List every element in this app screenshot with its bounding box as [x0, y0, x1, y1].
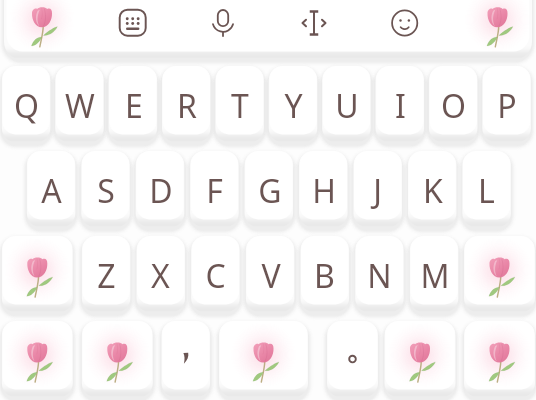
staticText: W — [65, 84, 95, 128]
button[interactable]: Emoji — [464, 321, 535, 397]
button[interactable]: Emoji — [219, 321, 308, 397]
button[interactable]: S — [81, 151, 130, 227]
button[interactable]: M — [410, 236, 459, 312]
staticText: F — [206, 169, 223, 213]
button[interactable]: P — [482, 66, 531, 142]
button[interactable]: Q — [2, 66, 51, 142]
staticText: L — [478, 169, 495, 213]
staticText: Y — [284, 84, 303, 128]
button[interactable]: E — [109, 66, 158, 142]
button[interactable]: H — [299, 151, 348, 227]
button[interactable]: Period — [327, 321, 378, 397]
button[interactable]: F — [190, 151, 239, 227]
staticText: C — [205, 254, 226, 298]
staticText: O — [441, 84, 466, 128]
button[interactable]: I — [376, 66, 425, 142]
staticText: Z — [97, 254, 116, 298]
staticText: M — [420, 254, 450, 298]
staticText: D — [149, 169, 173, 213]
button[interactable]: Comma — [162, 321, 211, 397]
staticText: I — [395, 84, 406, 128]
staticText: E — [125, 84, 143, 128]
staticText: H — [312, 169, 336, 213]
button[interactable]: Emoji — [2, 321, 73, 397]
staticText: Q — [14, 84, 39, 128]
staticText: K — [423, 169, 443, 213]
button[interactable]: T — [215, 66, 264, 142]
button[interactable]: W — [55, 66, 104, 142]
staticText: S — [97, 169, 115, 213]
staticText: R — [177, 84, 197, 128]
button[interactable]: K — [408, 151, 457, 227]
staticText: T — [231, 84, 249, 128]
button[interactable]: Z — [82, 236, 131, 312]
button[interactable]: A — [27, 151, 76, 227]
button[interactable]: Emoji — [82, 321, 153, 397]
button[interactable]: B — [300, 236, 349, 312]
staticText: B — [314, 254, 335, 298]
button[interactable]: Y — [269, 66, 318, 142]
button[interactable]: X — [136, 236, 185, 312]
staticText: A — [41, 169, 62, 213]
button[interactable]: O — [429, 66, 478, 142]
button[interactable]: U — [322, 66, 371, 142]
staticText: U — [335, 84, 359, 128]
button[interactable]: R — [162, 66, 211, 142]
button[interactable]: Emoji — [464, 236, 535, 312]
button[interactable]: D — [136, 151, 185, 227]
button[interactable]: L — [462, 151, 511, 227]
staticText: X — [151, 254, 170, 298]
button[interactable]: N — [355, 236, 404, 312]
button[interactable]: G — [245, 151, 294, 227]
button[interactable]: J — [353, 151, 402, 227]
staticText: P — [497, 84, 517, 128]
button[interactable]: V — [246, 236, 295, 312]
button[interactable]: Emoji — [2, 236, 73, 312]
staticText: J — [373, 169, 382, 213]
staticText: V — [261, 254, 281, 298]
staticText: N — [367, 254, 392, 298]
staticText: G — [258, 169, 282, 213]
button[interactable]: C — [191, 236, 240, 312]
button[interactable]: Emoji — [385, 321, 456, 397]
